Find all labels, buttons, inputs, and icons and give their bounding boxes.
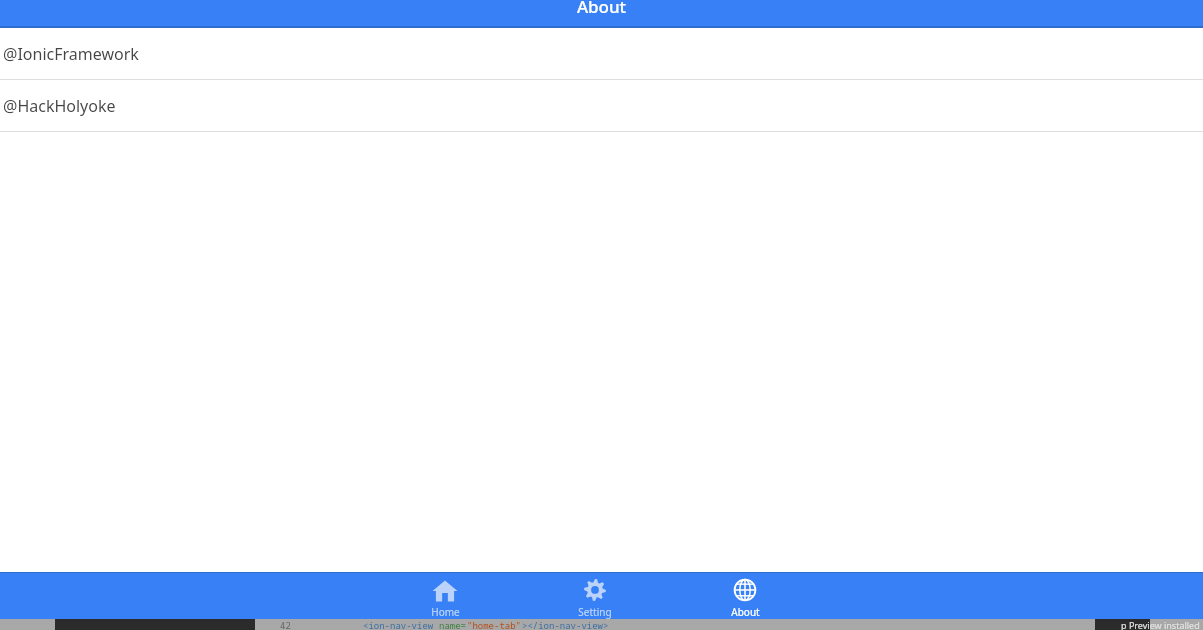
staticText: "home-tab" bbox=[467, 619, 522, 630]
staticText: Home bbox=[431, 605, 460, 619]
button[interactable]: @HackHolyoke bbox=[0, 80, 1203, 132]
staticText: <ion-nav-view bbox=[363, 619, 439, 630]
staticText: p Preview installed bbox=[1121, 619, 1200, 630]
staticText: About bbox=[731, 605, 760, 619]
staticText: name= bbox=[439, 619, 467, 630]
staticText: ></ion-nav-view> bbox=[522, 619, 609, 630]
button[interactable]: @IonicFramework bbox=[0, 28, 1203, 80]
staticText: Setting bbox=[578, 605, 612, 619]
button[interactable]: Setting bbox=[567, 573, 623, 619]
staticText: @IonicFramework bbox=[3, 43, 139, 65]
button[interactable]: Home bbox=[417, 573, 473, 619]
button[interactable]: About bbox=[717, 573, 773, 619]
staticText: @HackHolyoke bbox=[3, 95, 116, 117]
staticText: About bbox=[0, 0, 1203, 18]
staticText: 42 bbox=[280, 619, 291, 630]
